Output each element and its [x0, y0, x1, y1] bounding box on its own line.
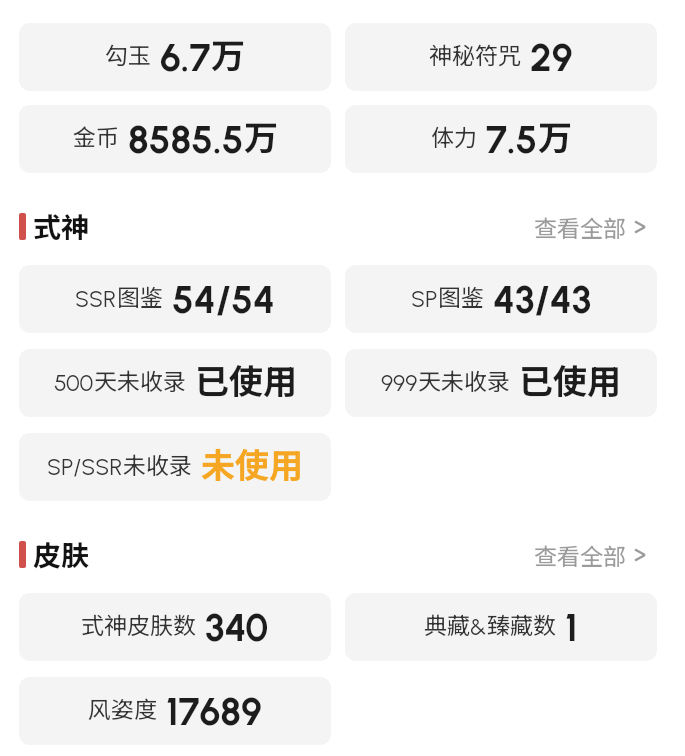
staticText: 图鉴: [438, 279, 484, 312]
staticText: &: [470, 613, 487, 641]
staticText: 未收录: [123, 447, 192, 480]
button[interactable]: 999: [345, 349, 657, 417]
button[interactable]: SP: [345, 265, 657, 333]
staticText: 未使用: [201, 439, 303, 488]
staticText: 式神: [33, 206, 90, 247]
staticText: 天未收录: [94, 363, 186, 396]
button[interactable]: 典藏: [345, 593, 657, 661]
button[interactable]: 风姿度: [19, 677, 331, 745]
staticText: 43/43: [493, 277, 592, 323]
staticText: 典藏: [424, 607, 470, 640]
button[interactable]: 查看全部: [528, 532, 657, 577]
staticText: 999: [381, 369, 418, 397]
staticText: 查看全部: [534, 210, 626, 243]
staticText: 金币: [73, 119, 119, 152]
staticText: 1: [565, 605, 578, 651]
staticText: 17689: [166, 689, 262, 735]
button[interactable]: 勾玉: [19, 23, 331, 91]
staticText: 已使用: [519, 355, 621, 404]
button[interactable]: 查看全部: [528, 204, 657, 249]
staticText: 风姿度: [88, 691, 157, 724]
staticText: 29: [530, 35, 573, 81]
staticText: 式神皮肤数: [81, 607, 196, 640]
staticText: 万: [538, 111, 572, 160]
staticText: 已使用: [195, 355, 297, 404]
staticText: SP: [411, 285, 438, 313]
staticText: 7.5: [486, 117, 538, 163]
staticText: 勾玉: [105, 37, 151, 70]
button[interactable]: 神秘符咒: [345, 23, 657, 91]
staticText: 54/54: [172, 277, 276, 323]
staticText: SP/SSR: [47, 453, 123, 481]
button[interactable]: 体力: [345, 105, 657, 173]
staticText: 皮肤: [33, 534, 90, 575]
staticText: 8585.5: [128, 117, 244, 163]
staticText: 体力: [431, 119, 477, 152]
button[interactable]: SSR: [19, 265, 331, 333]
staticText: 图鉴: [117, 279, 163, 312]
staticText: 6.7: [160, 35, 211, 81]
button[interactable]: 金币: [19, 105, 331, 173]
button[interactable]: 式神皮肤数: [19, 593, 331, 661]
staticText: 340: [205, 605, 269, 651]
staticText: 神秘符咒: [429, 37, 521, 70]
staticText: 天未收录: [418, 363, 510, 396]
staticText: SSR: [75, 285, 117, 313]
button[interactable]: SP/SSR: [19, 433, 331, 501]
staticText: 500: [54, 369, 94, 397]
staticText: 查看全部: [534, 538, 626, 571]
staticText: 万: [211, 29, 245, 78]
staticText: 臻藏数: [487, 607, 556, 640]
staticText: 万: [244, 111, 278, 160]
button[interactable]: 500: [19, 349, 331, 417]
